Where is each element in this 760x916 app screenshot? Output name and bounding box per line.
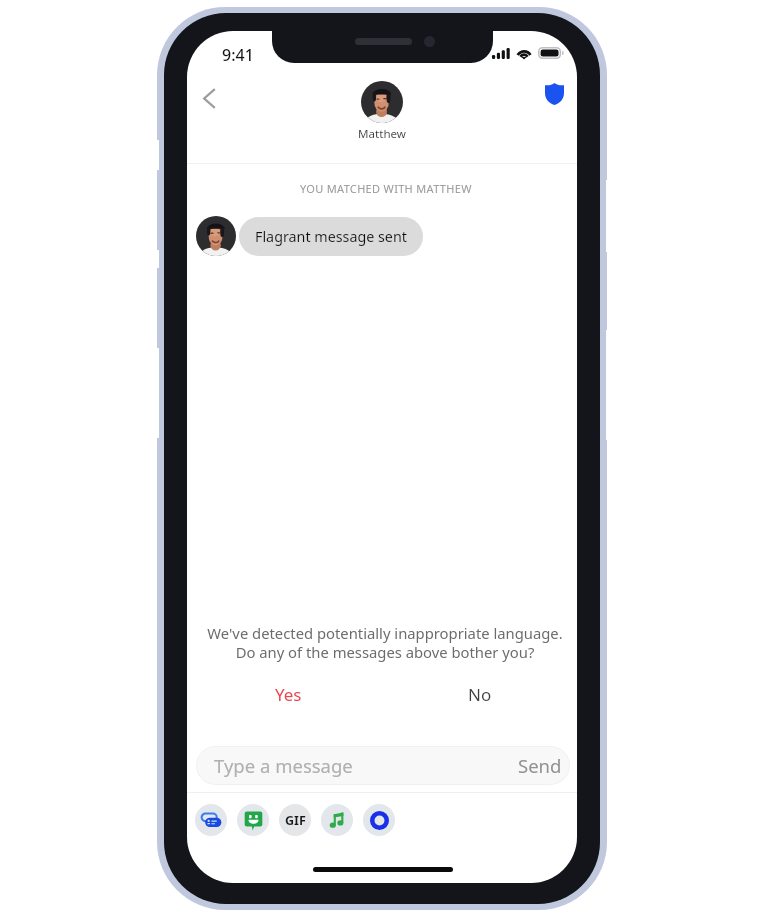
button[interactable]: Flagrant message sent xyxy=(239,217,423,256)
button[interactable]: Back xyxy=(188,77,230,119)
staticText: Type a message xyxy=(214,753,353,778)
button[interactable]: Type a message xyxy=(196,746,570,785)
button[interactable]: GIF xyxy=(279,804,311,836)
staticText: No xyxy=(468,683,492,706)
staticText: Flagrant message sent xyxy=(255,227,407,246)
button[interactable]: Safety shield xyxy=(532,72,576,116)
staticText: Yes xyxy=(275,683,302,706)
staticText: Send xyxy=(518,753,562,778)
staticText: Matthew xyxy=(358,126,406,141)
staticText: YOU MATCHED WITH MATTHEW xyxy=(300,181,472,196)
staticText: GIF xyxy=(285,812,306,829)
staticText: 9:41 xyxy=(222,44,254,66)
button[interactable]: Yes xyxy=(271,681,305,707)
button[interactable]: More apps xyxy=(363,804,395,836)
button[interactable]: Stickers xyxy=(237,804,269,836)
button[interactable]: Contact card xyxy=(195,804,227,836)
staticText: We've detected potentially inappropriate… xyxy=(190,623,577,662)
button[interactable]: Matthew xyxy=(327,81,437,141)
button[interactable]: No xyxy=(465,681,495,707)
button[interactable]: Music xyxy=(321,804,353,836)
